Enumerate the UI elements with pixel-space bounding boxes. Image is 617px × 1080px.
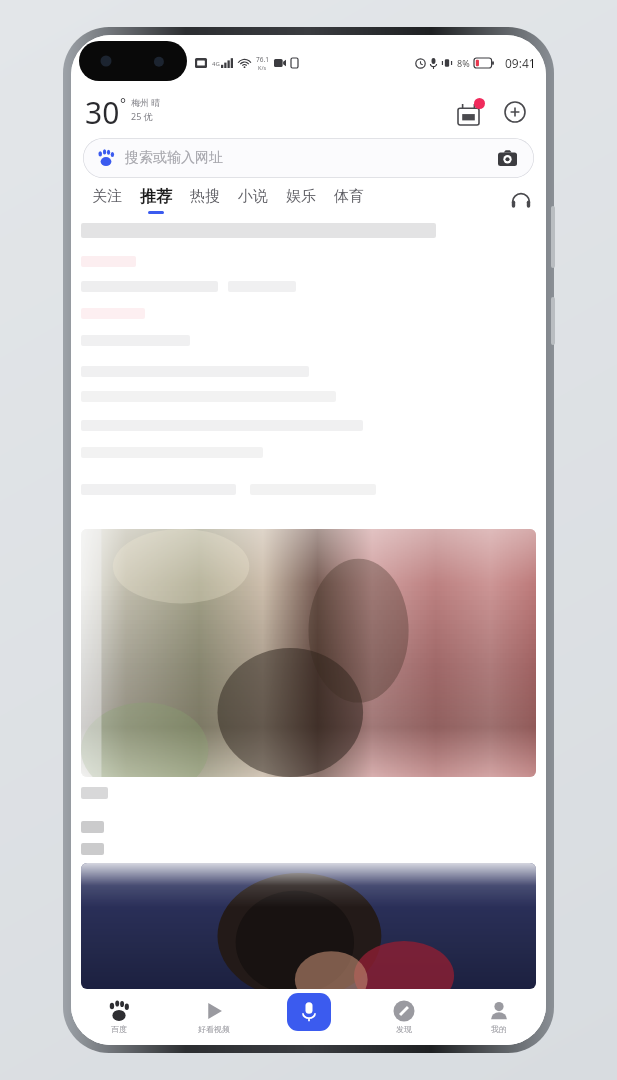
button[interactable] <box>81 787 108 855</box>
staticText: 梅州 晴 <box>131 96 161 108</box>
staticText: 好看视频 <box>198 1024 230 1034</box>
staticText: 关注 <box>92 187 122 206</box>
button[interactable]: 听新闻 <box>506 185 536 215</box>
staticText: 25 优 <box>131 110 153 122</box>
button[interactable] <box>81 863 536 989</box>
button[interactable]: 热搜 <box>190 181 220 219</box>
staticText: 热搜 <box>190 187 220 206</box>
staticText: 4G <box>212 60 220 68</box>
button[interactable]: 好看视频 <box>166 989 261 1045</box>
button[interactable]: 小说 <box>238 181 268 219</box>
staticText: 小说 <box>238 187 268 206</box>
button[interactable]: 体育 <box>334 181 364 219</box>
staticText: K/s <box>258 64 267 71</box>
staticText: 推荐 <box>140 187 172 207</box>
button[interactable]: 语音搜索 <box>287 993 331 1031</box>
button[interactable]: 相机搜索 <box>494 145 520 171</box>
button[interactable]: 30 <box>85 92 161 133</box>
button[interactable]: 关注 <box>92 181 122 219</box>
staticText: 百度 <box>111 1024 127 1034</box>
staticText: 09:41 <box>505 55 536 71</box>
staticText: 娱乐 <box>286 187 316 206</box>
staticText: 体育 <box>334 187 364 206</box>
staticText: 搜索或输入网址 <box>125 149 223 167</box>
staticText: 8% <box>457 57 470 69</box>
staticText: ° <box>120 94 126 113</box>
staticText: 我的 <box>491 1024 507 1034</box>
button[interactable]: 搜索或输入网址 <box>83 138 534 178</box>
button[interactable]: 我的 <box>451 989 546 1045</box>
button[interactable]: 添加 <box>498 95 532 129</box>
staticText: 30 <box>85 92 120 133</box>
staticText: 76.1 <box>256 55 269 64</box>
button[interactable]: 推荐 <box>140 181 172 219</box>
button[interactable] <box>81 529 536 777</box>
staticText: 发现 <box>396 1024 412 1034</box>
button[interactable]: 发现 <box>356 989 451 1045</box>
button[interactable] <box>81 219 536 529</box>
button[interactable]: 百度 <box>71 989 166 1045</box>
button[interactable]: 直播 <box>454 95 488 129</box>
button[interactable]: 娱乐 <box>286 181 316 219</box>
